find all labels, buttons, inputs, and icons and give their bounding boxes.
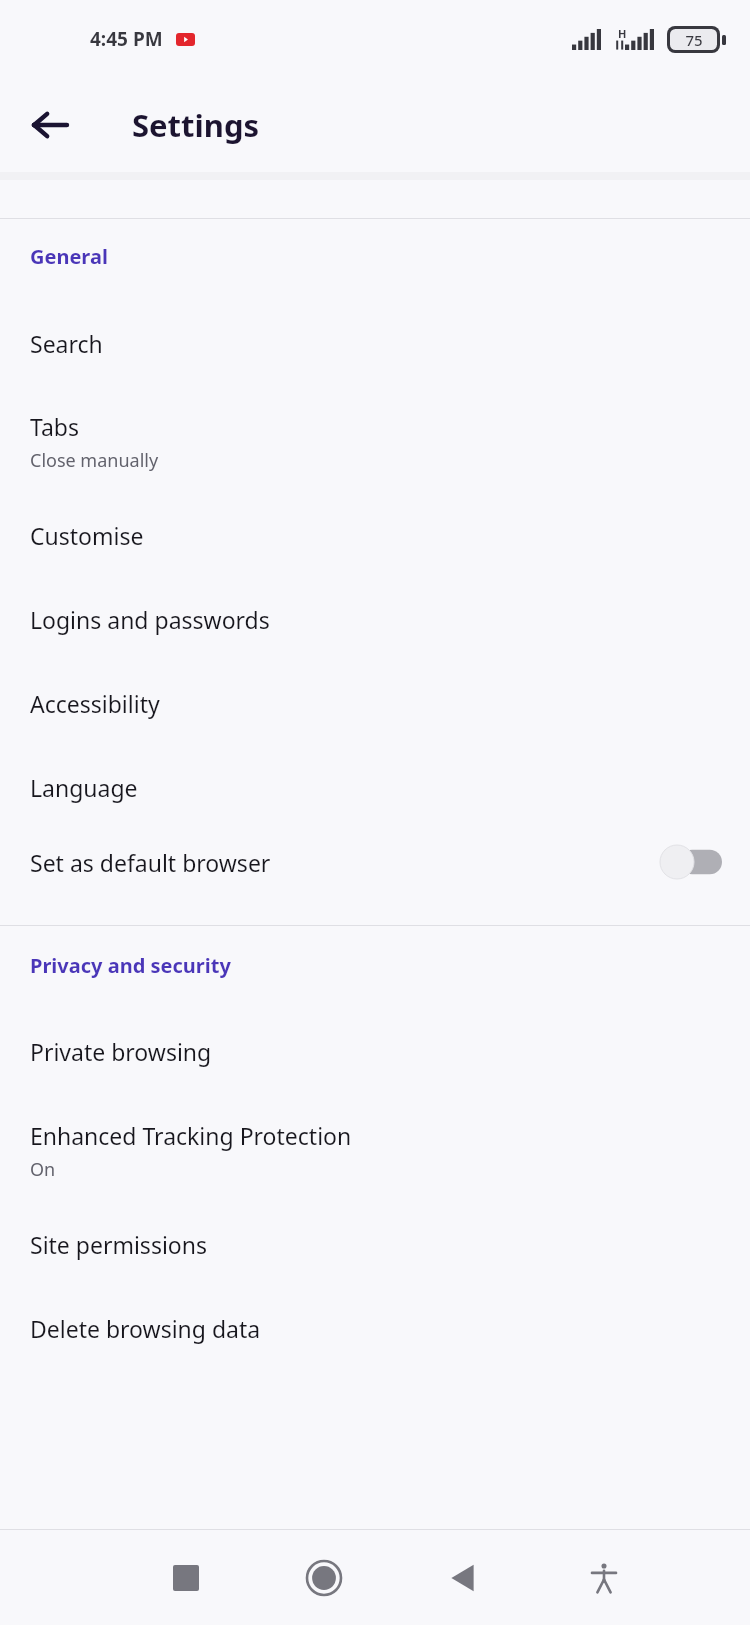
staticText: General	[30, 243, 750, 270]
button[interactable]: Accessibility	[573, 1538, 635, 1618]
button[interactable]: Logins and passwords	[0, 604, 750, 635]
staticText: 75	[685, 30, 703, 50]
staticText: 4:45 PM	[90, 26, 163, 52]
button[interactable]: Search	[0, 328, 750, 359]
staticText: Customise	[30, 520, 144, 551]
staticText: Search	[30, 328, 103, 359]
staticText: Private browsing	[30, 1036, 212, 1067]
button[interactable]: Recent apps	[155, 1538, 217, 1618]
staticText: Enhanced Tracking Protection	[30, 1120, 352, 1151]
button[interactable]: Back	[14, 89, 86, 161]
button[interactable]: Accessibility	[0, 688, 750, 719]
button[interactable]: Language	[0, 772, 750, 803]
staticText: Close manually	[30, 448, 159, 473]
staticText: Logins and passwords	[30, 604, 270, 635]
staticText: H	[618, 26, 627, 41]
staticText: Language	[30, 772, 138, 803]
button[interactable]: Tabs	[0, 411, 750, 473]
button[interactable]: Delete browsing data	[0, 1313, 750, 1344]
staticText: Accessibility	[30, 688, 160, 719]
staticText: On	[30, 1157, 56, 1182]
button[interactable]: Home	[293, 1538, 355, 1618]
staticText: Site permissions	[30, 1229, 207, 1260]
staticText: Privacy and security	[30, 952, 750, 979]
button[interactable]: Customise	[0, 520, 750, 551]
button[interactable]: Private browsing	[0, 1036, 750, 1067]
staticText: Set as default browser	[30, 847, 660, 878]
button[interactable]: Set as default browser	[0, 845, 750, 879]
button[interactable]: Back	[433, 1538, 495, 1618]
button[interactable]: Site permissions	[0, 1229, 750, 1260]
staticText: Tabs	[30, 411, 80, 442]
staticText: Delete browsing data	[30, 1313, 261, 1344]
staticText: Settings	[132, 104, 260, 146]
button[interactable]: Enhanced Tracking Protection	[0, 1120, 750, 1182]
